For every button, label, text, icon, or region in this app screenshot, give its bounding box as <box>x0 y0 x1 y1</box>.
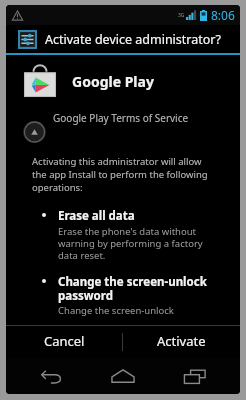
button[interactable]: Home <box>97 358 149 394</box>
button[interactable]: Activate <box>123 326 240 358</box>
staticText: Activate <box>157 332 206 350</box>
button[interactable]: Collapse <box>23 121 46 143</box>
staticText: Google Play <box>72 72 154 91</box>
button[interactable]: Cancel <box>6 326 122 358</box>
staticText: 3G <box>178 12 185 19</box>
staticText: Change the screen-unlock <box>58 304 174 317</box>
staticText: Erase all data <box>58 208 135 224</box>
staticText: Activate device administrator? <box>45 31 221 48</box>
staticText: Google Play Terms of Service <box>53 111 189 125</box>
button[interactable]: Recent apps <box>169 358 221 394</box>
staticText: Erase the phone's data without warning b… <box>58 225 222 262</box>
staticText: Change the screen-unlock password <box>58 274 222 303</box>
staticText: 8:06 <box>211 7 235 23</box>
button[interactable]: Back <box>26 358 78 394</box>
staticText: Cancel <box>44 332 85 350</box>
staticText: Activating this administrator will allow… <box>32 155 218 194</box>
